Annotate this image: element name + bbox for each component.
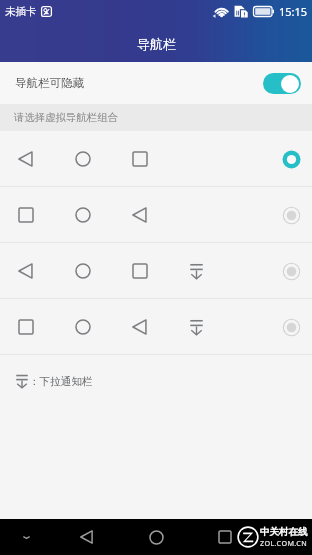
staticText: ZOL.COM.CN bbox=[260, 538, 308, 548]
staticText: 未插卡 bbox=[5, 5, 37, 18]
button[interactable]: Navigation bar can be hidden, on bbox=[263, 73, 301, 94]
button[interactable]: Hide navigation bar bbox=[6, 519, 46, 555]
staticText: 导航栏 bbox=[137, 36, 176, 52]
staticText: 导航栏可隐藏 bbox=[15, 76, 84, 90]
button[interactable]: Back bbox=[62, 519, 111, 555]
button[interactable] bbox=[0, 187, 312, 242]
button[interactable] bbox=[0, 299, 312, 354]
button[interactable]: 导航栏可隐藏 bbox=[0, 62, 312, 104]
staticText: 中关村在线 bbox=[260, 526, 308, 538]
button[interactable]: Home bbox=[132, 519, 180, 555]
staticText: 请选择虚拟导航栏组合 bbox=[14, 111, 118, 124]
staticText: ：下拉通知栏 bbox=[29, 375, 93, 388]
button[interactable] bbox=[0, 243, 312, 298]
button[interactable] bbox=[0, 131, 312, 186]
staticText: 15:15 bbox=[279, 4, 308, 19]
button[interactable]: Recent apps bbox=[201, 519, 249, 555]
